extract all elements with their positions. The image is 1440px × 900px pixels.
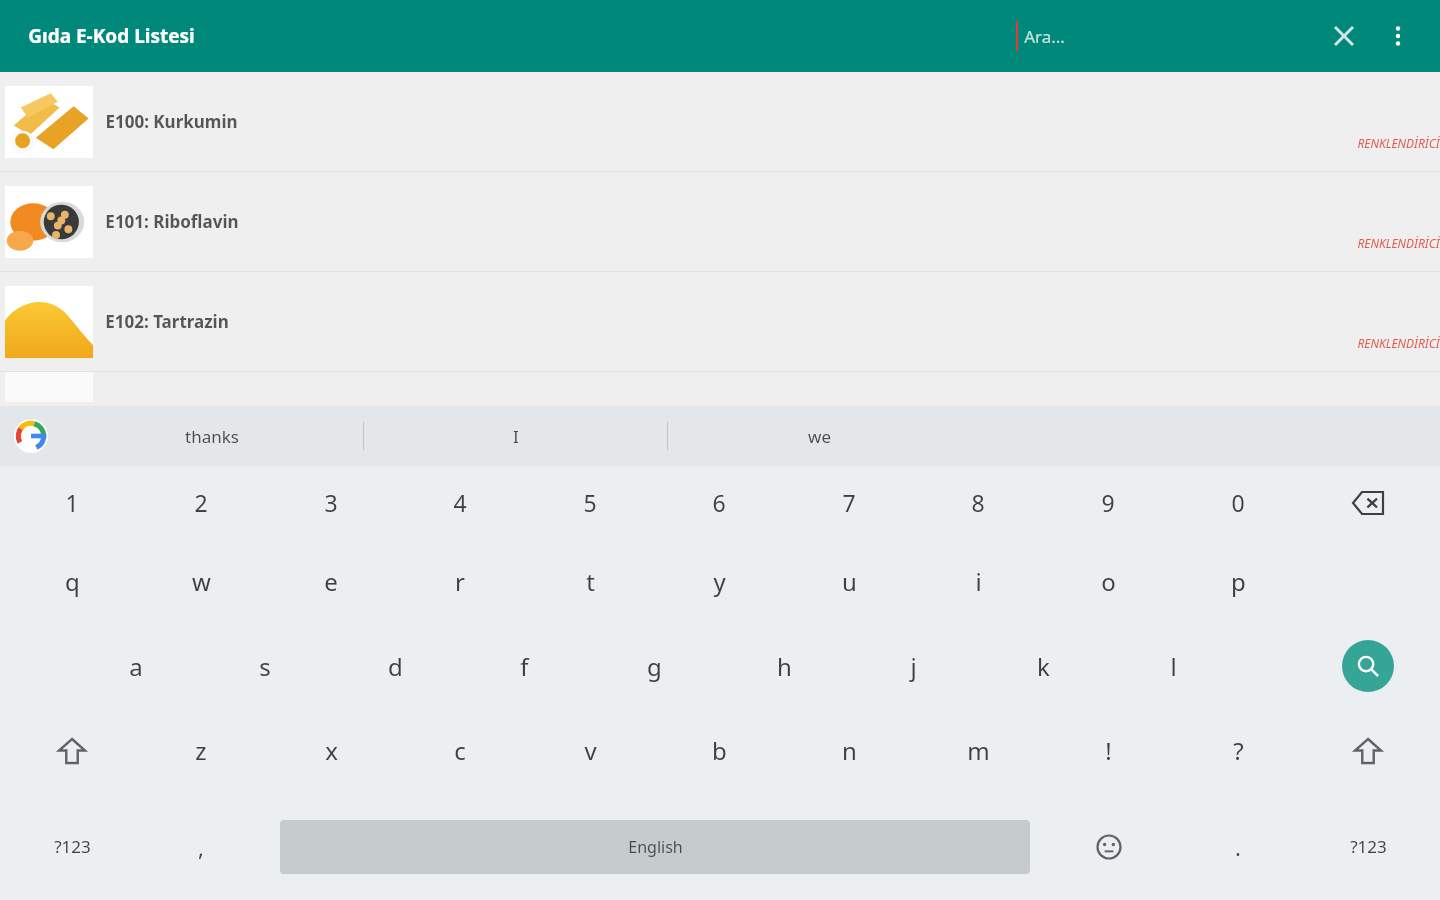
staticText: 9 bbox=[1101, 487, 1115, 518]
staticText: RENKLENDİRİCİ bbox=[1357, 235, 1440, 251]
staticText: E100: Kurkumin bbox=[105, 110, 238, 133]
staticText: , bbox=[198, 832, 204, 862]
staticText: a bbox=[129, 650, 143, 683]
button[interactable]: Search bbox=[1313, 624, 1423, 708]
button[interactable]: E101: Riboflavin bbox=[0, 172, 1440, 271]
button[interactable]: 4 bbox=[405, 466, 515, 539]
button[interactable]: h bbox=[729, 624, 839, 708]
staticText: k bbox=[1037, 650, 1050, 683]
button[interactable]: g bbox=[599, 624, 709, 708]
staticText: j bbox=[910, 650, 917, 683]
button[interactable]: j bbox=[858, 624, 968, 708]
button[interactable]: ?123 bbox=[12, 793, 132, 900]
button[interactable]: b bbox=[664, 708, 774, 793]
staticText: 6 bbox=[712, 487, 726, 518]
button[interactable]: we bbox=[668, 406, 971, 466]
button[interactable]: t bbox=[535, 539, 645, 624]
staticText: E102: Tartrazin bbox=[105, 310, 229, 333]
button[interactable]: ! bbox=[1053, 708, 1163, 793]
button[interactable]: Ara... bbox=[1016, 0, 1316, 72]
button[interactable]: w bbox=[146, 539, 256, 624]
button[interactable]: Emoji bbox=[1064, 793, 1154, 900]
staticText: English bbox=[628, 836, 683, 858]
button[interactable]: v bbox=[535, 708, 645, 793]
button[interactable]: More options bbox=[1372, 10, 1424, 62]
button[interactable]: Clear search bbox=[1316, 8, 1372, 64]
staticText: 1 bbox=[65, 487, 79, 518]
staticText: I bbox=[513, 425, 519, 448]
button[interactable]: a bbox=[81, 624, 191, 708]
staticText: h bbox=[777, 650, 792, 683]
staticText: d bbox=[388, 650, 403, 683]
button[interactable]: . bbox=[1183, 793, 1293, 900]
button[interactable]: u bbox=[794, 539, 904, 624]
staticText: l bbox=[1170, 650, 1177, 683]
staticText: w bbox=[192, 565, 211, 598]
button[interactable]: y bbox=[664, 539, 774, 624]
button[interactable]: l bbox=[1118, 624, 1228, 708]
button[interactable]: 2 bbox=[146, 466, 256, 539]
button[interactable]: o bbox=[1053, 539, 1163, 624]
staticText: 4 bbox=[453, 487, 467, 518]
button[interactable]: 6 bbox=[664, 466, 774, 539]
button[interactable]: ?123 bbox=[1308, 793, 1428, 900]
button[interactable]: E100: Kurkumin bbox=[0, 72, 1440, 171]
button[interactable]: I bbox=[364, 406, 667, 466]
button[interactable]: thanks bbox=[60, 406, 363, 466]
staticText: 0 bbox=[1231, 487, 1245, 518]
staticText: ? bbox=[1233, 734, 1244, 767]
staticText: g bbox=[647, 650, 662, 683]
button[interactable]: Shift bbox=[1323, 708, 1413, 793]
staticText: RENKLENDİRİCİ bbox=[1357, 135, 1440, 151]
staticText: . bbox=[1235, 832, 1241, 862]
staticText: f bbox=[520, 650, 529, 683]
button[interactable]: q bbox=[17, 539, 127, 624]
button[interactable]: i bbox=[923, 539, 1033, 624]
button[interactable]: r bbox=[405, 539, 515, 624]
staticText: t bbox=[586, 565, 595, 598]
staticText: 8 bbox=[971, 487, 985, 518]
staticText: v bbox=[584, 734, 597, 767]
staticText: E101: Riboflavin bbox=[105, 210, 239, 233]
button[interactable]: e bbox=[276, 539, 386, 624]
button[interactable]: m bbox=[923, 708, 1033, 793]
staticText: e bbox=[324, 565, 338, 598]
button[interactable]: 9 bbox=[1053, 466, 1163, 539]
button[interactable]: 3 bbox=[276, 466, 386, 539]
button[interactable]: Backspace bbox=[1318, 466, 1418, 539]
button[interactable]: 1 bbox=[17, 466, 127, 539]
button[interactable]: 5 bbox=[535, 466, 645, 539]
button[interactable]: f bbox=[469, 624, 579, 708]
staticText: Gıda E-Kod Listesi bbox=[28, 23, 195, 49]
button[interactable]: n bbox=[794, 708, 904, 793]
staticText: ?123 bbox=[1350, 835, 1387, 858]
button[interactable]: s bbox=[210, 624, 320, 708]
staticText: u bbox=[842, 565, 857, 598]
button[interactable]: c bbox=[405, 708, 515, 793]
staticText: ?123 bbox=[54, 835, 91, 858]
button[interactable]: 8 bbox=[923, 466, 1033, 539]
staticText: b bbox=[712, 734, 727, 767]
staticText: ! bbox=[1105, 734, 1112, 767]
button[interactable]: 0 bbox=[1183, 466, 1293, 539]
button[interactable]: , bbox=[146, 793, 256, 900]
staticText: we bbox=[808, 425, 831, 448]
staticText: y bbox=[713, 565, 726, 598]
button[interactable]: ? bbox=[1183, 708, 1293, 793]
button[interactable]: z bbox=[146, 708, 256, 793]
staticText: 2 bbox=[194, 487, 208, 518]
staticText: o bbox=[1101, 565, 1116, 598]
button[interactable]: English bbox=[280, 820, 1030, 874]
button[interactable]: 7 bbox=[794, 466, 904, 539]
button[interactable]: p bbox=[1183, 539, 1293, 624]
staticText: thanks bbox=[185, 425, 239, 448]
staticText: Ara... bbox=[1024, 25, 1065, 48]
button[interactable]: E102: Tartrazin bbox=[0, 272, 1440, 371]
button[interactable]: k bbox=[988, 624, 1098, 708]
button[interactable]: d bbox=[340, 624, 450, 708]
button[interactable]: Shift bbox=[27, 708, 117, 793]
staticText: q bbox=[65, 565, 80, 598]
staticText: i bbox=[975, 565, 982, 598]
button[interactable]: Google bbox=[8, 413, 54, 459]
button[interactable]: x bbox=[276, 708, 386, 793]
